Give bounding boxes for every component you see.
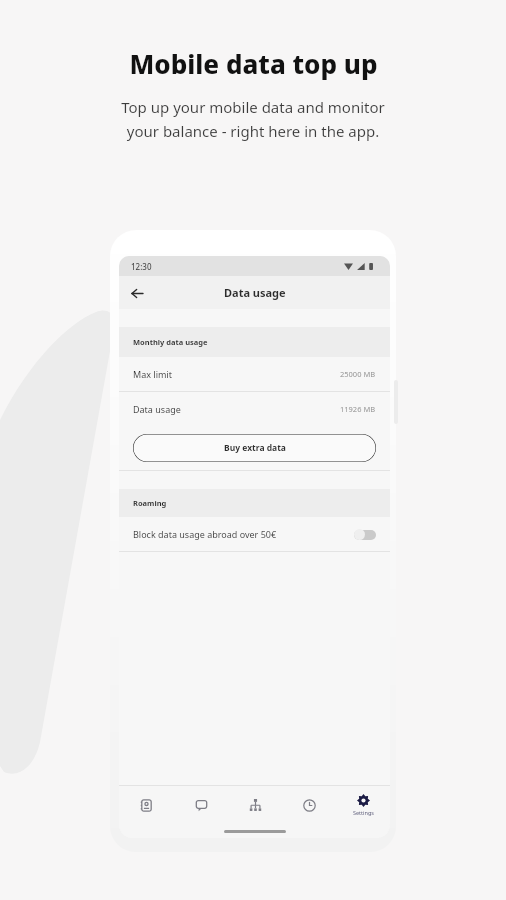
staticText: Monthly data usage bbox=[133, 337, 208, 347]
staticText: Top up your mobile data and monitor your… bbox=[121, 97, 385, 141]
button[interactable]: Max limit bbox=[119, 357, 390, 391]
staticText: Block data usage abroad over 50€ bbox=[133, 528, 277, 540]
button[interactable]: Contacts bbox=[119, 786, 174, 824]
staticText: Buy extra data bbox=[224, 442, 286, 454]
staticText: Settings bbox=[353, 809, 374, 816]
button[interactable]: Buy extra data bbox=[133, 434, 376, 462]
button[interactable]: Settings bbox=[336, 786, 390, 824]
button[interactable]: Data usage bbox=[119, 392, 390, 426]
button[interactable]: Block data usage abroad over 50€ bbox=[119, 517, 390, 551]
button[interactable]: Back bbox=[125, 281, 149, 305]
staticText: Roaming bbox=[133, 498, 167, 508]
button[interactable]: Network bbox=[228, 786, 282, 824]
staticText: Max limit bbox=[133, 368, 172, 380]
staticText: 12:30 bbox=[131, 261, 152, 272]
button[interactable]: History bbox=[282, 786, 336, 824]
staticText: Data usage bbox=[224, 285, 286, 300]
staticText: Data usage bbox=[133, 403, 181, 415]
staticText: 25000 MB bbox=[340, 369, 376, 379]
staticText: Mobile data top up bbox=[129, 46, 378, 81]
button[interactable]: Messages bbox=[174, 786, 228, 824]
staticText: 11926 MB bbox=[340, 404, 376, 414]
